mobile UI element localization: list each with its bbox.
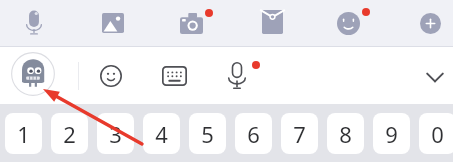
button[interactable]: Stickers (329, 0, 379, 45)
button[interactable]: 3 (97, 113, 134, 154)
staticText: 2 (63, 119, 76, 149)
staticText: 0 (431, 119, 444, 149)
button[interactable]: 9 (373, 113, 410, 154)
staticText: 3 (109, 119, 122, 149)
staticText: 7 (293, 119, 306, 149)
staticText: 5 (201, 119, 214, 149)
button[interactable]: 1 (5, 113, 42, 154)
button[interactable]: 2 (51, 113, 88, 154)
button[interactable]: Voice input (221, 50, 273, 102)
staticText: 4 (155, 119, 168, 149)
staticText: 6 (247, 119, 260, 149)
staticText: 1 (17, 119, 30, 149)
button[interactable]: Red packet (249, 0, 295, 45)
button[interactable]: 8 (327, 113, 364, 154)
button[interactable]: Photos (90, 0, 136, 46)
button[interactable]: Emoji (85, 50, 137, 102)
button[interactable]: Voice message (11, 0, 57, 45)
button[interactable]: 0 (419, 113, 453, 154)
button[interactable]: 4 (143, 113, 180, 154)
button[interactable]: Assistant (5, 46, 61, 102)
button[interactable]: Add (407, 0, 453, 46)
button[interactable]: 7 (281, 113, 318, 154)
staticText: 9 (385, 119, 398, 149)
button[interactable]: 6 (235, 113, 272, 154)
button[interactable]: Collapse (409, 51, 453, 103)
staticText: 8 (339, 119, 352, 149)
button[interactable]: Camera (171, 0, 221, 45)
button[interactable]: Keyboard (148, 50, 200, 102)
button[interactable]: 5 (189, 113, 226, 154)
